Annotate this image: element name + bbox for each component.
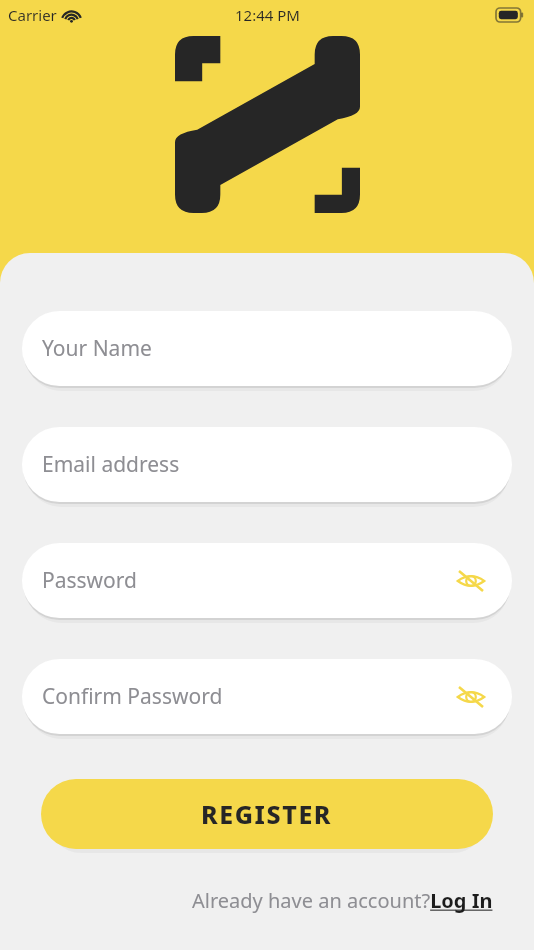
staticText: REGISTER: [201, 797, 333, 831]
staticText: Already have an account?Log In: [192, 887, 493, 914]
button[interactable]: Confirm Password: [22, 659, 512, 734]
staticText: 12:44 PM: [235, 5, 300, 25]
staticText: Password: [42, 566, 137, 595]
button[interactable]: Password: [22, 543, 512, 618]
button[interactable]: Show password: [452, 678, 490, 716]
staticText: Carrier: [8, 5, 57, 25]
staticText: Email address: [42, 450, 180, 479]
button[interactable]: REGISTER: [41, 779, 493, 849]
button[interactable]: Email address: [22, 427, 512, 502]
staticText: Your Name: [42, 334, 152, 363]
button[interactable]: Your Name: [22, 311, 512, 386]
button[interactable]: Show password: [452, 562, 490, 600]
button[interactable]: Already have an account?Log In: [192, 887, 493, 914]
staticText: Confirm Password: [42, 682, 223, 711]
